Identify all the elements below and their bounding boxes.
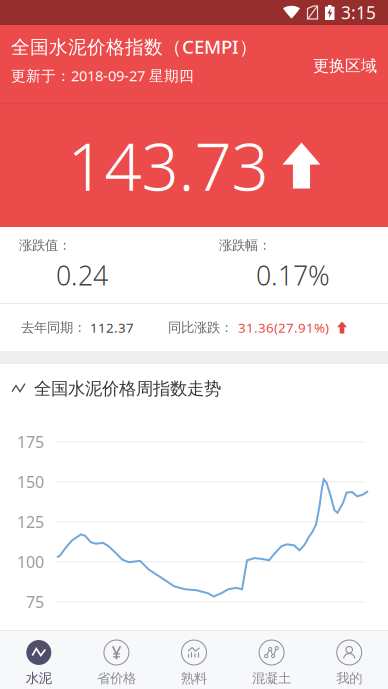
staticText: 我的 [336, 670, 362, 686]
staticText: 150 [17, 471, 44, 492]
staticText: 143.73 [67, 122, 268, 209]
button[interactable]: 更换区域 [313, 34, 377, 76]
staticText: 100 [17, 551, 44, 572]
staticText: 涨跌幅： [219, 237, 271, 253]
staticText: 全国水泥价格指数（CEMPI） [11, 34, 258, 59]
staticText: 175 [17, 431, 44, 452]
button[interactable]: 熟料 [155, 631, 233, 689]
staticText: ¥ [111, 641, 121, 664]
staticText: 75 [26, 591, 44, 612]
staticText: 更换区域 [313, 56, 377, 76]
staticText: 水泥 [26, 670, 52, 686]
staticText: 31.36(27.91%) [238, 319, 329, 336]
staticText: 125 [17, 511, 44, 532]
button[interactable]: 我的 [310, 631, 388, 689]
staticText: 全国水泥价格周指数走势 [34, 378, 221, 399]
staticText: 同比涨跌： [168, 319, 233, 336]
staticText: 混凝土 [252, 670, 291, 686]
button[interactable]: ¥ [78, 631, 155, 689]
staticText: 更新于：2018-09-27 星期四 [11, 66, 194, 85]
button[interactable]: 混凝土 [233, 631, 310, 689]
staticText: 0.17% [256, 257, 330, 293]
staticText: 去年同期： [21, 319, 86, 336]
staticText: 熟料 [181, 670, 207, 686]
staticText: 3:15 [341, 1, 376, 24]
staticText: 省价格 [97, 670, 136, 686]
button[interactable]: 水泥 [0, 631, 78, 689]
staticText: 112.37 [90, 319, 134, 336]
staticText: 0.24 [56, 257, 108, 293]
staticText: 涨跌值： [19, 237, 71, 253]
